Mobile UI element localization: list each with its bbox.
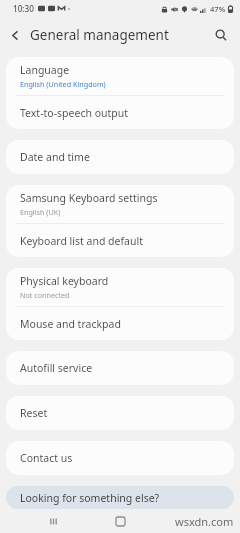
- button[interactable]: Physical keyboard: [6, 268, 234, 306]
- staticText: General management: [30, 26, 169, 44]
- button[interactable]: Autofill service: [6, 351, 234, 385]
- button[interactable]: Home: [109, 510, 131, 532]
- staticText: Text-to-speech output: [20, 106, 129, 120]
- button[interactable]: Reset: [6, 396, 234, 430]
- staticText: wsxdn.com: [175, 514, 234, 529]
- button[interactable]: Search: [206, 20, 236, 50]
- staticText: Looking for something else?: [20, 491, 160, 505]
- staticText: Date and time: [20, 150, 90, 164]
- staticText: Mouse and trackpad: [20, 317, 121, 331]
- staticText: Language: [20, 63, 70, 77]
- button[interactable]: Language: [6, 57, 234, 95]
- button[interactable]: Text-to-speech output: [6, 96, 234, 129]
- staticText: 10:30: [13, 3, 34, 14]
- staticText: Samsung Keyboard settings: [20, 191, 158, 205]
- staticText: Keyboard list and default: [20, 234, 143, 248]
- staticText: Reset: [20, 406, 48, 420]
- button[interactable]: Contact us: [6, 441, 234, 475]
- button[interactable]: Back: [0, 20, 30, 50]
- staticText: English (UK): [20, 207, 61, 217]
- button[interactable]: Date and time: [6, 140, 234, 174]
- staticText: Not connected: [20, 290, 70, 300]
- button[interactable]: Recents: [42, 510, 64, 532]
- button[interactable]: Looking for something else?: [6, 486, 234, 509]
- button[interactable]: Keyboard list and default: [6, 224, 234, 257]
- staticText: Autofill service: [20, 361, 93, 375]
- button[interactable]: Mouse and trackpad: [6, 307, 234, 340]
- button[interactable]: Samsung Keyboard settings: [6, 185, 234, 223]
- staticText: 47%: [210, 4, 226, 14]
- staticText: English (United Kingdom): [20, 79, 106, 89]
- staticText: Contact us: [20, 451, 73, 465]
- staticText: Physical keyboard: [20, 274, 109, 288]
